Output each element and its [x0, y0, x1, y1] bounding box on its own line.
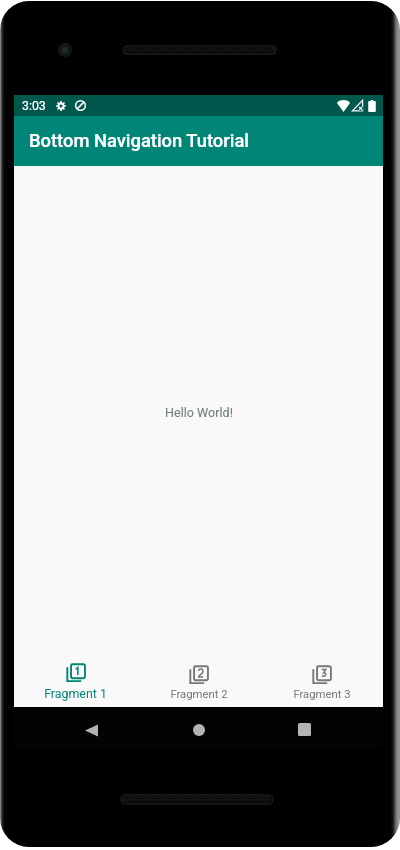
staticText: Bottom Navigation Tutorial — [29, 130, 249, 152]
button[interactable]: Fragment 1 — [14, 658, 137, 707]
staticText: 3:03 — [22, 99, 46, 113]
button[interactable]: Fragment 2 — [137, 658, 260, 707]
button[interactable]: Back — [82, 721, 100, 739]
staticText: Fragment 2 — [170, 688, 228, 701]
staticText: Hello World! — [165, 405, 233, 420]
staticText: Fragment 3 — [293, 688, 351, 701]
button[interactable]: Home — [189, 720, 209, 740]
button[interactable]: Fragment 3 — [260, 658, 383, 707]
staticText: Fragment 1 — [44, 686, 107, 701]
button[interactable]: Recent apps — [295, 720, 313, 738]
